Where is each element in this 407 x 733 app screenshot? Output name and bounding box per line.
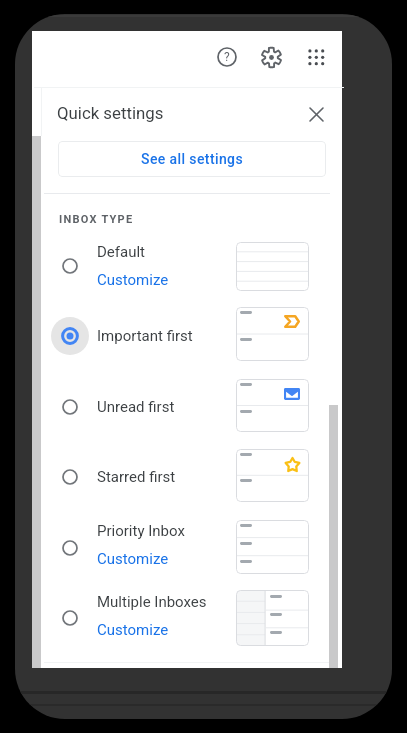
button[interactable]: Default bbox=[44, 235, 330, 297]
button[interactable]: Starred first bbox=[44, 446, 330, 508]
button[interactable]: Important first bbox=[44, 305, 330, 367]
button[interactable]: Google apps bbox=[300, 41, 332, 73]
button[interactable]: Multiple Inboxes bbox=[44, 587, 330, 649]
button[interactable]: Priority Inbox bbox=[44, 517, 330, 579]
staticText: Starred first bbox=[97, 468, 176, 486]
staticText: Default bbox=[97, 243, 145, 261]
button[interactable]: Customize bbox=[97, 550, 169, 568]
staticText: Important first bbox=[97, 327, 193, 345]
staticText: Multiple Inboxes bbox=[97, 593, 207, 611]
staticText: See all settings bbox=[141, 151, 244, 167]
button[interactable]: Customize bbox=[97, 621, 169, 639]
button[interactable]: Settings bbox=[255, 41, 287, 73]
staticText: Quick settings bbox=[57, 103, 164, 123]
button[interactable]: Unread first bbox=[44, 376, 330, 438]
staticText: ? bbox=[224, 50, 230, 64]
button[interactable]: Customize bbox=[97, 271, 169, 289]
button[interactable]: Help bbox=[211, 41, 243, 73]
button[interactable]: Close quick settings bbox=[300, 98, 332, 130]
button[interactable]: See all settings bbox=[58, 141, 326, 177]
staticText: Unread first bbox=[97, 398, 175, 416]
staticText: Priority Inbox bbox=[97, 522, 185, 540]
staticText: INBOX TYPE bbox=[59, 213, 134, 226]
